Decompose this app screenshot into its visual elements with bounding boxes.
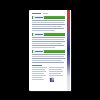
button[interactable] (32, 33, 65, 48)
button[interactable]: Publisher logo (29, 10, 71, 91)
button[interactable] (32, 16, 65, 31)
button[interactable]: Publisher logo (49, 77, 54, 82)
button[interactable] (32, 50, 65, 63)
button[interactable]: Publisher logo (32, 65, 65, 82)
